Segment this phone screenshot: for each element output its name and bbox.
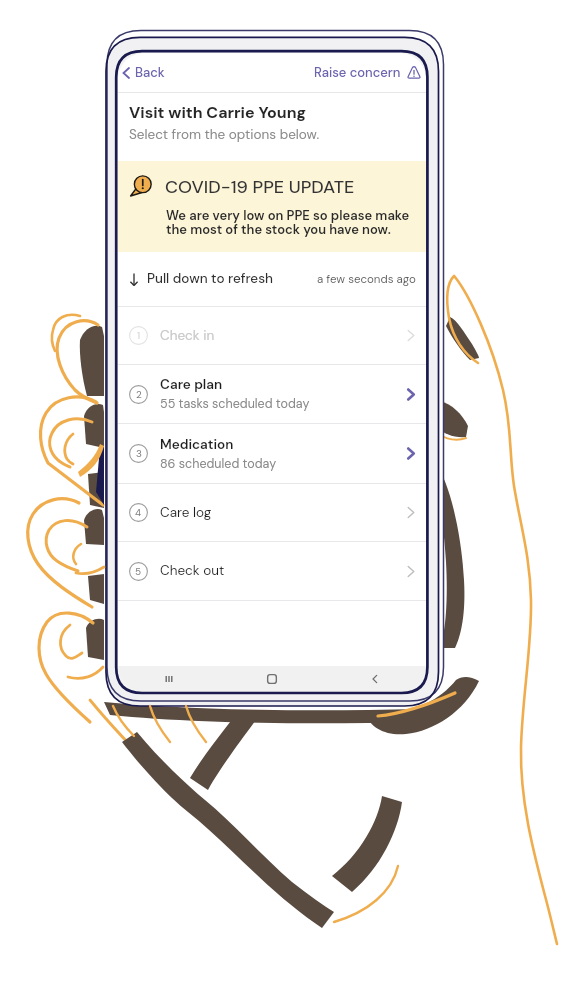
- staticText: Check in: [160, 327, 215, 345]
- staticText: Care log: [160, 504, 212, 522]
- staticText: a few seconds ago: [317, 272, 416, 287]
- staticText: Visit with Carrie Young: [129, 102, 307, 123]
- staticText: 86 scheduled today: [160, 456, 277, 472]
- staticText: Select from the options below.: [129, 126, 320, 144]
- staticText: 5: [135, 565, 142, 578]
- button[interactable]: 3: [118, 424, 426, 483]
- other: Back: [368, 672, 382, 686]
- staticText: COVID-19 PPE UPDATE: [165, 175, 355, 198]
- button[interactable]: 5: [118, 542, 426, 600]
- staticText: Back: [135, 64, 165, 81]
- staticText: Care plan: [160, 376, 223, 394]
- other: Home: [265, 672, 279, 686]
- other: Raise concern: [407, 66, 421, 79]
- staticText: Raise concern: [314, 64, 401, 81]
- staticText: 2: [136, 388, 142, 401]
- staticText: Medication: [160, 436, 234, 454]
- button[interactable]: Raise concern: [306, 58, 426, 87]
- other: Recents: [162, 672, 176, 686]
- staticText: 55 tasks scheduled today: [160, 396, 310, 412]
- button[interactable]: Pull down to refresh: [118, 252, 426, 306]
- button[interactable]: 1: [118, 307, 426, 364]
- button[interactable]: Back: [118, 58, 173, 87]
- staticText: Check out: [160, 562, 225, 580]
- button[interactable]: 2: [118, 365, 426, 423]
- staticText: 4: [135, 506, 142, 519]
- staticText: 1: [137, 329, 141, 342]
- staticText: Pull down to refresh: [147, 270, 274, 288]
- staticText: 3: [136, 447, 142, 460]
- staticText: We are very low on PPE so please make th…: [166, 207, 410, 238]
- button[interactable]: 4: [118, 484, 426, 541]
